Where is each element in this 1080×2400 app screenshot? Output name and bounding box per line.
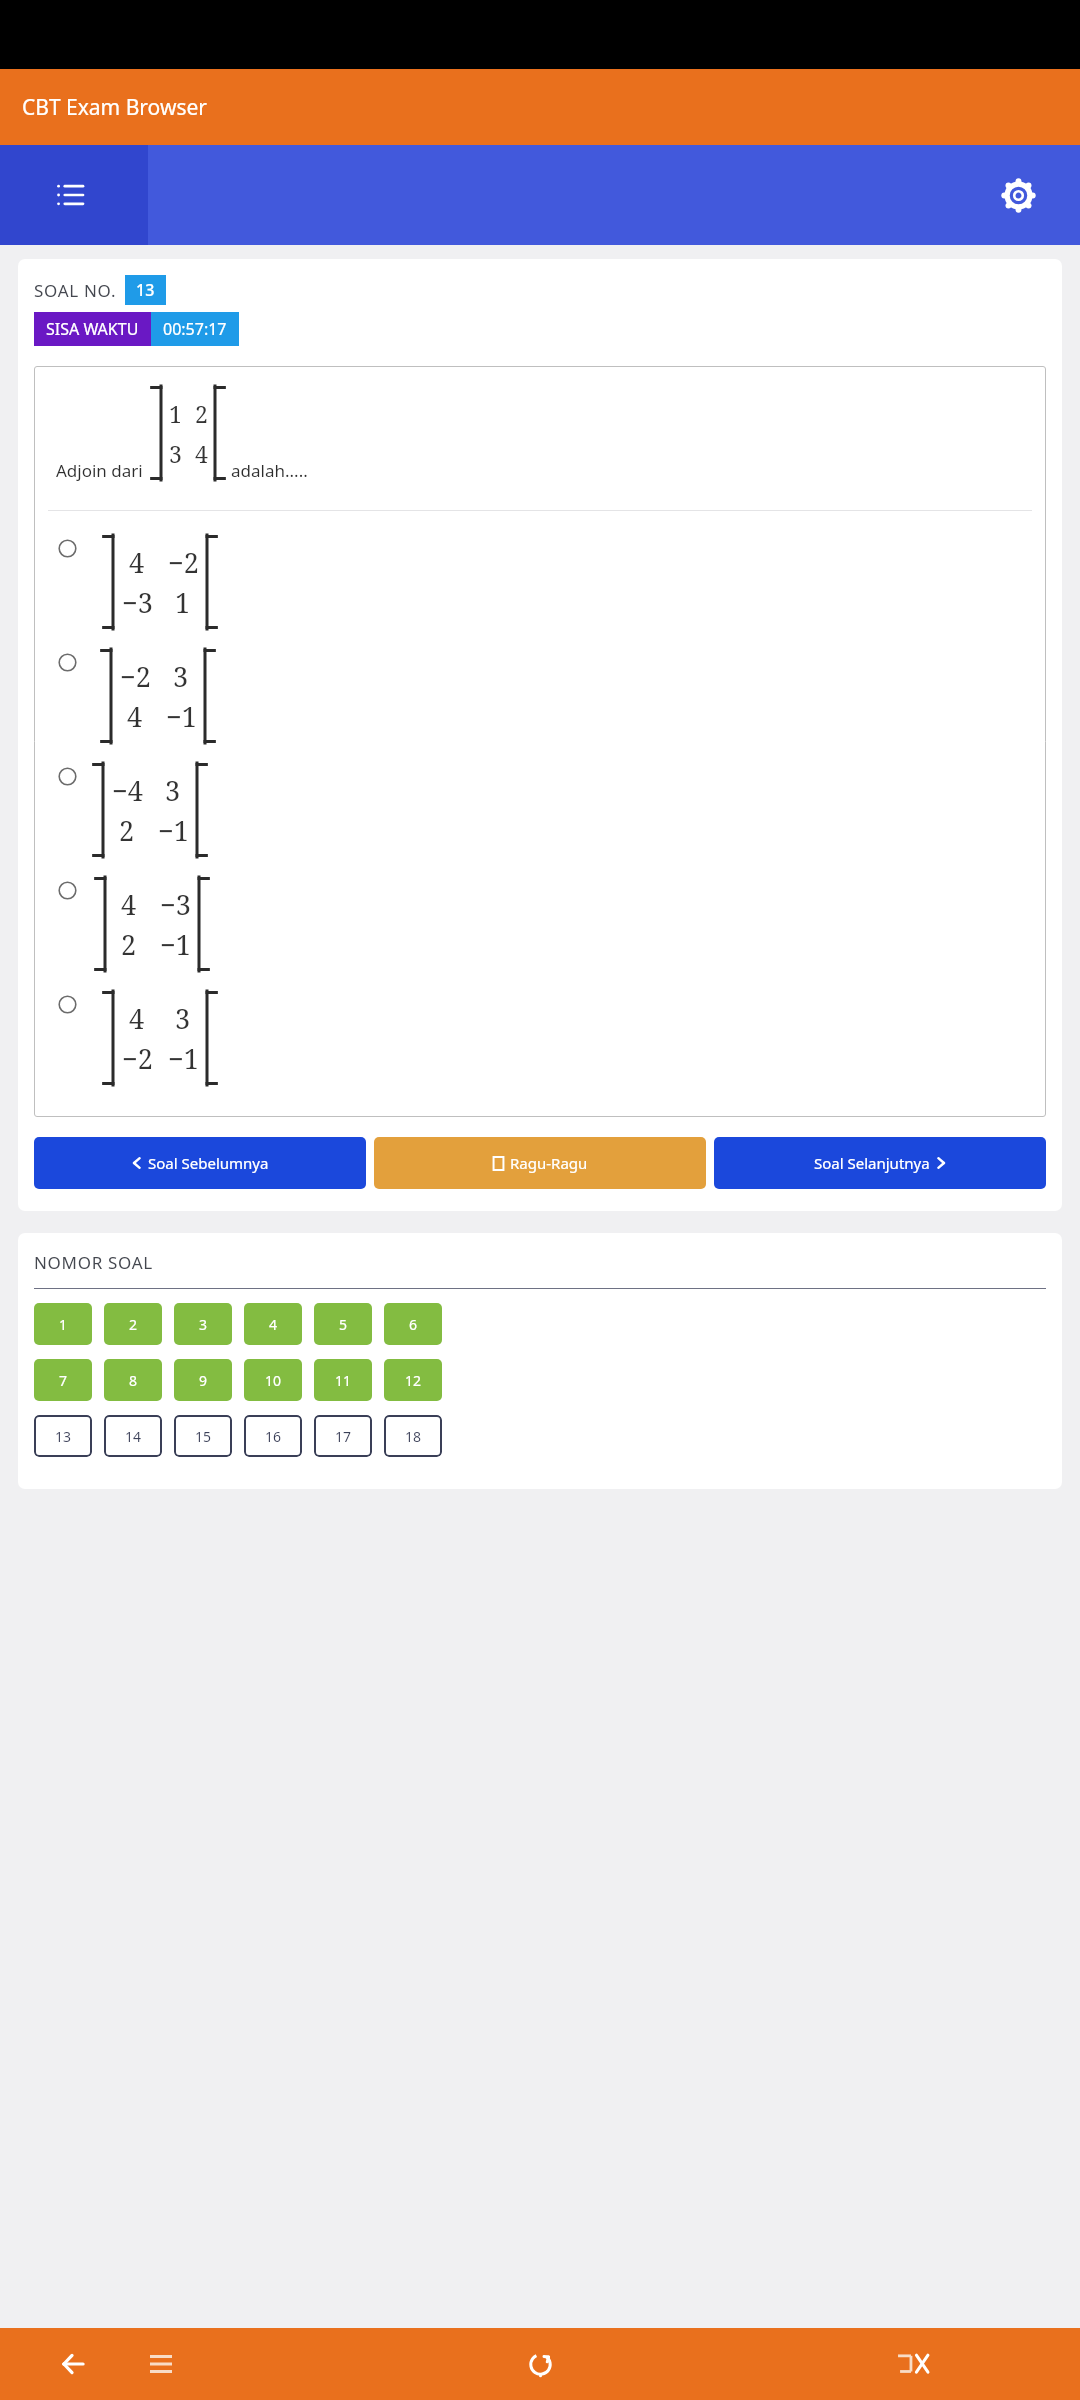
staticText: 4 xyxy=(129,1000,145,1037)
staticText: 00:57:17 xyxy=(163,318,227,340)
staticText: 3 xyxy=(199,1315,208,1334)
button[interactable]: 12 xyxy=(384,1359,442,1401)
staticText: −2 xyxy=(168,544,199,581)
button[interactable]: 14 xyxy=(104,1415,162,1457)
staticText: SISA WAKTU xyxy=(46,318,139,340)
staticText: 2 xyxy=(119,812,135,849)
staticText: Soal Selanjutnya xyxy=(814,1153,930,1173)
button[interactable]: −2 xyxy=(48,643,1032,749)
staticText: 2 xyxy=(129,1315,138,1334)
button[interactable]: Settings xyxy=(994,171,1042,219)
button[interactable]: −4 xyxy=(48,757,1032,863)
staticText: −1 xyxy=(168,1040,199,1077)
staticText: −1 xyxy=(166,698,197,735)
staticText: 11 xyxy=(335,1371,352,1390)
button[interactable]: 5 xyxy=(314,1303,372,1345)
staticText: NOMOR SOAL xyxy=(34,1251,153,1274)
button[interactable]: 16 xyxy=(244,1415,302,1457)
staticText: −1 xyxy=(160,926,191,963)
staticText: 3 xyxy=(169,438,182,469)
staticText: −1 xyxy=(158,812,189,849)
button[interactable]: 2 xyxy=(104,1303,162,1345)
staticText: 1 xyxy=(59,1315,68,1334)
staticText: 18 xyxy=(405,1427,422,1446)
staticText: 7 xyxy=(59,1371,68,1390)
button[interactable]: 15 xyxy=(174,1415,232,1457)
button[interactable]: Menu xyxy=(138,2341,184,2387)
staticText: SOAL NO. xyxy=(34,279,117,302)
button[interactable]: 4 xyxy=(48,529,1032,635)
button[interactable]: Back xyxy=(50,2341,96,2387)
staticText: 4 xyxy=(121,886,137,923)
staticText: 3 xyxy=(165,772,181,809)
button[interactable]: 17 xyxy=(314,1415,372,1457)
staticText: 4 xyxy=(195,438,208,469)
staticText: 4 xyxy=(269,1315,278,1334)
staticText: 4 xyxy=(129,544,145,581)
button[interactable]: 11 xyxy=(314,1359,372,1401)
staticText: 2 xyxy=(195,398,208,429)
button[interactable]: 18 xyxy=(384,1415,442,1457)
staticText: Soal Sebelumnya xyxy=(148,1153,269,1173)
staticText: 1 xyxy=(175,584,191,621)
button[interactable]: 8 xyxy=(104,1359,162,1401)
staticText: 16 xyxy=(265,1427,282,1446)
staticText: −3 xyxy=(122,584,153,621)
staticText: −4 xyxy=(112,772,143,809)
button[interactable]: 6 xyxy=(384,1303,442,1345)
staticText: 3 xyxy=(173,658,189,695)
staticText: 3 xyxy=(175,1000,191,1037)
button[interactable]: 10 xyxy=(244,1359,302,1401)
staticText: 5 xyxy=(339,1315,348,1334)
staticText: 8 xyxy=(129,1371,138,1390)
staticText: 2 xyxy=(121,926,137,963)
staticText: Adjoin dari xyxy=(56,459,143,482)
staticText: 4 xyxy=(127,698,143,735)
staticText: 15 xyxy=(195,1427,212,1446)
button[interactable]: 3 xyxy=(174,1303,232,1345)
staticText: 9 xyxy=(199,1371,208,1390)
staticText: CBT Exam Browser xyxy=(22,93,207,122)
button[interactable]: 4 xyxy=(48,871,1032,977)
button[interactable]: Soal Sebelumnya xyxy=(34,1137,366,1189)
staticText: 13 xyxy=(136,279,155,301)
button[interactable]: 9 xyxy=(174,1359,232,1401)
staticText: 6 xyxy=(409,1315,418,1334)
button[interactable]: 4 xyxy=(48,985,1032,1091)
button[interactable]: 4 xyxy=(244,1303,302,1345)
staticText: 14 xyxy=(125,1427,142,1446)
staticText: 10 xyxy=(265,1371,282,1390)
staticText: 1 xyxy=(169,398,182,429)
staticText: 12 xyxy=(405,1371,422,1390)
button[interactable]: 13 xyxy=(34,1415,92,1457)
button[interactable]: Refresh xyxy=(516,2340,564,2388)
button[interactable]: Ragu-Ragu xyxy=(374,1137,706,1189)
staticText: −3 xyxy=(160,886,191,923)
staticText: −2 xyxy=(120,658,151,695)
staticText: adalah..... xyxy=(231,459,308,482)
button[interactable]: 7 xyxy=(34,1359,92,1401)
staticText: 13 xyxy=(55,1427,72,1446)
button[interactable]: Exit xyxy=(886,2337,940,2391)
staticText: 17 xyxy=(335,1427,352,1446)
staticText: Ragu-Ragu xyxy=(510,1153,588,1173)
button[interactable]: 1 xyxy=(34,1303,92,1345)
button[interactable]: Menu xyxy=(48,173,92,217)
button[interactable]: Soal Selanjutnya xyxy=(714,1137,1046,1189)
staticText: −2 xyxy=(122,1040,153,1077)
